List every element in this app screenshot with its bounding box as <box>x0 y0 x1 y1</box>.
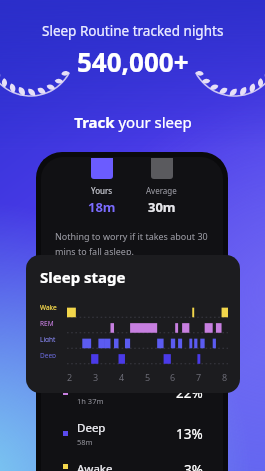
staticText: mins to fall asleep. <box>55 245 134 257</box>
staticText: 7 <box>196 371 202 383</box>
button[interactable]: REM <box>41 379 223 406</box>
staticText: 3 <box>93 371 99 383</box>
staticText: 18m <box>88 198 116 216</box>
staticText: 5 <box>145 371 151 383</box>
button[interactable]: Awake <box>41 461 223 471</box>
staticText: REM <box>40 319 54 326</box>
staticText: 540,000+ <box>77 44 189 79</box>
staticText: 1h 37m <box>77 396 104 406</box>
staticText: Nothing to worry if it takes about 30 <box>55 230 208 242</box>
staticText: Sleep stage <box>40 267 126 287</box>
staticText: 22% <box>176 384 203 402</box>
staticText: 2 <box>67 371 73 383</box>
staticText: Deep <box>40 351 57 358</box>
staticText: 4 <box>119 371 125 383</box>
staticText: Wake <box>40 303 57 310</box>
staticText: 58m <box>77 437 93 447</box>
button[interactable]: Sleep stage <box>26 255 240 393</box>
staticText: 8 <box>222 371 228 383</box>
staticText: Sleep Routine tracked nights <box>42 22 224 40</box>
staticText: 30m <box>148 198 176 216</box>
staticText: 6 <box>170 371 176 383</box>
staticText: Deep <box>77 420 106 436</box>
staticText: Yours <box>91 185 113 196</box>
staticText: Average <box>146 185 177 196</box>
staticText: Light <box>40 335 56 342</box>
staticText: REM <box>77 379 101 395</box>
staticText: Track your sleep <box>74 112 192 132</box>
button[interactable]: Deep <box>41 420 223 447</box>
staticText: 13% <box>176 425 203 443</box>
staticText: 3% <box>184 461 203 471</box>
staticText: Awake <box>77 461 113 471</box>
